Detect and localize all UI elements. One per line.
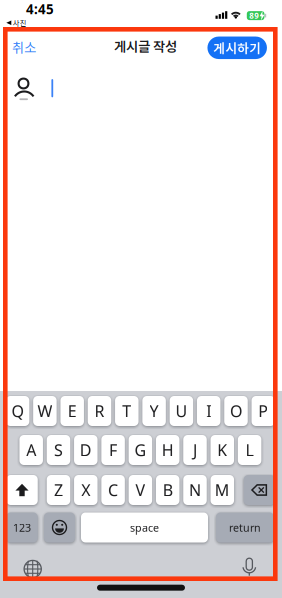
staticText: C (108, 479, 118, 501)
button[interactable]: Delete (244, 475, 275, 505)
button[interactable]: E (60, 396, 84, 426)
button[interactable]: Numbers (6, 512, 38, 542)
button[interactable]: Next keyboard (17, 553, 48, 584)
button[interactable]: Emoji (44, 512, 75, 542)
staticText: G (134, 439, 146, 461)
staticText: 123 (13, 520, 31, 535)
button[interactable]: Shift (6, 475, 38, 505)
button[interactable]: A (19, 435, 43, 465)
button[interactable]: 게시하기 (207, 36, 267, 59)
button[interactable]: B (156, 475, 179, 505)
staticText: U (175, 400, 187, 422)
button[interactable]: N (183, 475, 207, 505)
staticText: E (68, 400, 77, 422)
staticText: P (258, 400, 268, 422)
button[interactable]: L (238, 435, 261, 465)
button[interactable]: H (156, 435, 179, 465)
staticText: D (80, 439, 92, 461)
staticText: return (229, 520, 261, 535)
staticText: M (215, 479, 230, 501)
button[interactable]: U (170, 396, 193, 426)
staticText: J (193, 439, 197, 461)
button[interactable]: M (211, 475, 234, 505)
button[interactable]: 취소 (7, 37, 41, 57)
button[interactable]: Q (6, 396, 29, 426)
staticText: R (94, 400, 104, 422)
staticText: 89 (249, 10, 259, 21)
staticText: X (81, 479, 90, 501)
staticText: 게시글 작성 (114, 36, 177, 56)
staticText: W (37, 400, 52, 422)
staticText: A (26, 439, 36, 461)
staticText: L (246, 439, 254, 461)
staticText: S (54, 439, 63, 461)
staticText: 게시하기 (213, 39, 261, 57)
button[interactable]: return (216, 512, 274, 542)
button[interactable]: C (101, 475, 125, 505)
staticText: F (109, 439, 117, 461)
staticText: T (122, 400, 131, 422)
button[interactable]: J (183, 435, 207, 465)
staticText: B (163, 479, 173, 501)
staticText: Q (12, 400, 24, 422)
staticText: H (162, 439, 174, 461)
button[interactable]: V (129, 475, 152, 505)
button[interactable]: Dictation (234, 552, 265, 583)
button[interactable]: Z (47, 475, 70, 505)
staticText: I (206, 400, 211, 422)
button[interactable]: Y (142, 396, 166, 426)
staticText: 4:45 (26, 0, 54, 18)
button[interactable]: O (224, 396, 248, 426)
staticText: space (130, 520, 159, 535)
staticText: 사진 (13, 18, 27, 28)
staticText: K (217, 439, 227, 461)
staticText: 취소 (12, 37, 36, 57)
button[interactable]: W (33, 396, 57, 426)
staticText: N (189, 479, 201, 501)
staticText: O (230, 400, 242, 422)
staticText: Y (150, 400, 159, 422)
staticText: V (135, 479, 145, 501)
button[interactable]: F (101, 435, 125, 465)
button[interactable]: P (252, 396, 275, 426)
button[interactable]: space (81, 512, 208, 542)
button[interactable]: R (88, 396, 111, 426)
staticText: Z (54, 479, 63, 501)
button[interactable]: G (129, 435, 152, 465)
button[interactable]: X (74, 475, 97, 505)
button[interactable]: T (115, 396, 139, 426)
button[interactable]: I (197, 396, 220, 426)
button[interactable]: D (74, 435, 97, 465)
button[interactable]: S (47, 435, 70, 465)
button[interactable]: K (210, 435, 234, 465)
